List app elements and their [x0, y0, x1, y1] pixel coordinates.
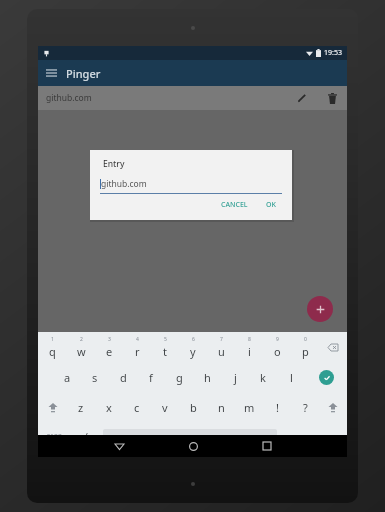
button[interactable]: j	[221, 362, 249, 392]
button[interactable]: 7	[207, 333, 235, 362]
button[interactable]: h	[193, 362, 221, 392]
button[interactable]: a	[53, 362, 81, 392]
staticText: j	[234, 370, 237, 385]
staticText: h	[204, 370, 211, 385]
staticText: .com	[319, 432, 336, 442]
staticText: Entry	[103, 158, 125, 170]
button[interactable]: Recent apps	[230, 435, 304, 457]
staticText: k	[260, 370, 266, 385]
button[interactable]: 5	[151, 333, 179, 362]
button[interactable]: Shift	[38, 392, 67, 422]
staticText: e	[106, 344, 113, 359]
button[interactable]: f	[137, 362, 165, 392]
staticText: z	[78, 400, 84, 415]
button[interactable]: 0	[291, 333, 319, 362]
button[interactable]: s	[81, 362, 109, 392]
staticText: 8	[248, 336, 251, 343]
button[interactable]: l	[277, 362, 305, 392]
staticText: ,	[293, 430, 296, 444]
button[interactable]: ?123	[38, 422, 72, 452]
button[interactable]: g	[165, 362, 193, 392]
button[interactable]: z	[67, 392, 95, 422]
button[interactable]: github.com	[38, 86, 347, 110]
button[interactable]: 6	[179, 333, 207, 362]
button[interactable]: .com	[308, 422, 347, 452]
staticText: 9	[276, 336, 279, 343]
button[interactable]: Home	[156, 435, 230, 457]
button[interactable]: ,	[280, 422, 308, 452]
staticText: t	[163, 344, 167, 359]
button[interactable]: v	[151, 392, 179, 422]
button[interactable]: Backspace	[319, 333, 347, 362]
button[interactable]: k	[249, 362, 277, 392]
staticText: s	[92, 370, 98, 385]
staticText: 4	[136, 336, 139, 343]
button[interactable]: Enter	[305, 362, 347, 392]
staticText: v	[162, 400, 168, 415]
staticText: /	[84, 430, 88, 444]
button[interactable]: Open navigation drawer	[38, 60, 64, 86]
button[interactable]: c	[123, 392, 151, 422]
button[interactable]: 9	[263, 333, 291, 362]
staticText: ?123	[47, 432, 63, 442]
staticText: m	[244, 400, 255, 415]
button[interactable]: Back	[82, 435, 156, 457]
staticText: CANCEL	[221, 200, 248, 210]
staticText: 0	[304, 336, 307, 343]
button[interactable]: d	[109, 362, 137, 392]
staticText: o	[274, 344, 281, 359]
staticText: p	[302, 344, 309, 359]
button[interactable]: x	[95, 392, 123, 422]
button[interactable]: Delete	[323, 89, 341, 107]
staticText: d	[120, 370, 127, 385]
button[interactable]: ?	[291, 392, 319, 422]
staticText: 6	[192, 336, 195, 343]
staticText: n	[218, 400, 225, 415]
staticText: u	[218, 344, 225, 359]
button[interactable]: Shift	[319, 392, 347, 422]
button[interactable]: 2	[67, 333, 95, 362]
staticText: a	[64, 370, 71, 385]
staticText: 7	[220, 336, 223, 343]
staticText: 2	[80, 336, 83, 343]
button[interactable]: !	[263, 392, 291, 422]
staticText: w	[77, 344, 86, 359]
staticText: 5	[164, 336, 167, 343]
button[interactable]: n	[207, 392, 235, 422]
staticText: y	[190, 344, 196, 359]
staticText: f	[149, 370, 153, 385]
button[interactable]: github.com	[100, 178, 282, 190]
staticText: 1	[51, 336, 54, 343]
staticText: !	[276, 400, 279, 415]
staticText: ?	[303, 400, 308, 415]
button[interactable]: m	[235, 392, 263, 422]
staticText: l	[290, 370, 293, 385]
staticText: 19:53	[324, 48, 342, 58]
staticText: x	[106, 400, 112, 415]
staticText: r	[135, 344, 140, 359]
button[interactable]: CANCEL	[215, 197, 254, 213]
button[interactable]: Add entry	[307, 296, 333, 322]
button[interactable]: 1	[38, 333, 67, 362]
button[interactable]: Edit	[293, 89, 311, 107]
button[interactable]: 8	[235, 333, 263, 362]
staticText: github.com	[101, 178, 147, 190]
staticText: 3	[108, 336, 111, 343]
button[interactable]: 3	[95, 333, 123, 362]
button[interactable]: 4	[123, 333, 151, 362]
staticText: c	[134, 400, 140, 415]
button[interactable]: Space	[103, 429, 277, 445]
staticText: OK	[266, 200, 276, 210]
staticText: g	[176, 370, 183, 385]
button[interactable]: b	[179, 392, 207, 422]
staticText: q	[49, 344, 56, 359]
staticText: b	[190, 400, 197, 415]
button[interactable]: /	[72, 422, 100, 452]
staticText: i	[248, 344, 251, 359]
staticText: github.com	[46, 92, 92, 104]
button[interactable]: OK	[260, 197, 282, 213]
staticText: Pinger	[66, 66, 101, 81]
